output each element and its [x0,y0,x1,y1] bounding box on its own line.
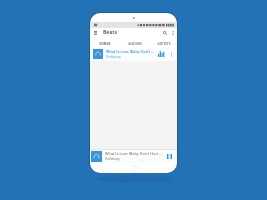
button[interactable]: Song options [167,50,175,58]
staticText: Haddaway [105,157,120,161]
button[interactable]: What Is Love (Baby Don't Hurt Me) [90,47,177,61]
staticText: SONGS [99,41,111,45]
button[interactable]: What Is Love (Baby Don't Hurt Me) [90,149,177,163]
staticText: Haddaway [106,55,121,59]
staticText: ARTISTS [157,41,171,45]
button[interactable]: Search [161,29,169,37]
button[interactable]: More options [169,29,176,36]
button[interactable]: Pause [164,151,175,162]
button[interactable]: Open navigation drawer [92,29,99,36]
button[interactable]: Now playing [156,49,166,59]
staticText: Beats [103,29,117,36]
staticText: What Is Love (Baby Don't Hurt Me) [105,151,164,156]
staticText: ALBUMS [128,41,142,45]
staticText: What Is Love (Baby Don't Hurt Me) [106,49,156,54]
button[interactable]: ARTISTS [150,37,177,47]
button[interactable]: ALBUMS [120,37,150,47]
button[interactable]: SONGS [90,37,120,47]
